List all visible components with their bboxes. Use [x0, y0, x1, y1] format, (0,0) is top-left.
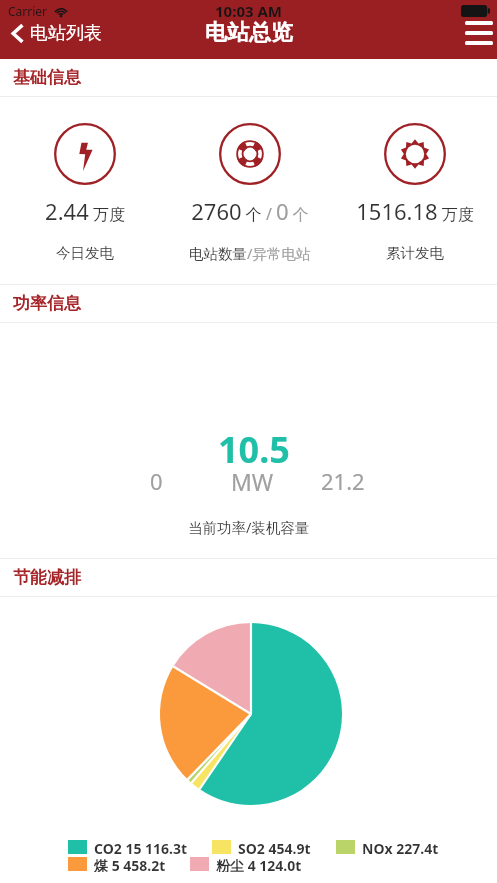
- staticText: 煤 5 458.2t: [94, 856, 166, 872]
- staticText: Carrier: [8, 3, 48, 19]
- staticText: 1516.18 万度: [356, 196, 474, 226]
- staticText: 2760 个 / 0 个: [191, 196, 309, 226]
- staticText: 当前功率/装机容量: [188, 517, 310, 537]
- staticText: 功率信息: [13, 293, 81, 314]
- staticText: SO2 454.9t: [238, 839, 311, 855]
- staticText: 电站数量/异常电站: [189, 243, 311, 263]
- staticText: 今日发电: [56, 244, 114, 262]
- staticText: 电站总览: [205, 19, 293, 47]
- staticText: 节能减排: [13, 567, 81, 588]
- staticText: 21.2: [321, 466, 365, 496]
- staticText: 10:03 AM: [215, 1, 282, 21]
- button[interactable]: Menu: [457, 14, 497, 52]
- staticText: 2.44 万度: [45, 196, 125, 226]
- staticText: 累计发电: [386, 244, 444, 262]
- staticText: 10.5: [218, 425, 290, 471]
- staticText: 粉尘 4 124.0t: [216, 856, 302, 872]
- staticText: MW: [231, 466, 274, 497]
- button[interactable]: 电站列表: [0, 18, 110, 49]
- staticText: 基础信息: [13, 67, 81, 88]
- staticText: 0: [150, 466, 163, 496]
- staticText: 电站列表: [30, 22, 102, 45]
- staticText: NOx 227.4t: [362, 839, 439, 855]
- staticText: CO2 15 116.3t: [94, 839, 188, 855]
